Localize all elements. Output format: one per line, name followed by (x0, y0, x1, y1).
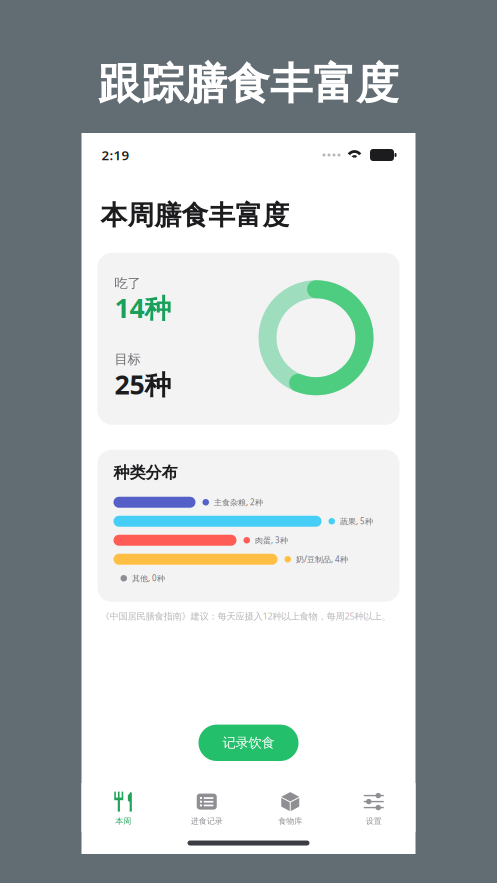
staticText: 种类分布 (113, 463, 177, 483)
staticText: 2:19 (101, 146, 129, 164)
button[interactable]: 本周 (81, 783, 165, 832)
staticText: 25种 (114, 366, 171, 402)
button[interactable]: 进食记录 (165, 783, 248, 832)
button[interactable]: 记录饮食 (198, 725, 298, 761)
staticText: 食物库 (278, 816, 302, 826)
staticText: 设置 (366, 816, 382, 826)
staticText: 进食记录 (191, 816, 223, 826)
staticText: 其他, 0种 (132, 573, 165, 583)
staticText: 记录饮食 (222, 735, 274, 751)
button[interactable]: 设置 (332, 783, 415, 832)
staticText: 吃了 (114, 275, 140, 291)
staticText: 本周 (115, 816, 131, 826)
staticText: 肉蛋, 3种 (255, 535, 288, 545)
staticText: 14种 (114, 290, 171, 325)
button[interactable]: 食物库 (248, 783, 332, 832)
staticText: 《中国居民膳食指南》建议：每天应摄入12种以上食物，每周25种以上。 (100, 610, 390, 622)
staticText: 主食杂粮, 2种 (214, 497, 263, 507)
staticText: 蔬果, 5种 (340, 516, 373, 526)
staticText: 奶/豆制品, 4种 (296, 554, 348, 564)
staticText: 本周膳食丰富度 (100, 199, 289, 232)
staticText: 目标 (114, 351, 140, 367)
staticText: 跟踪膳食丰富度 (98, 58, 399, 110)
